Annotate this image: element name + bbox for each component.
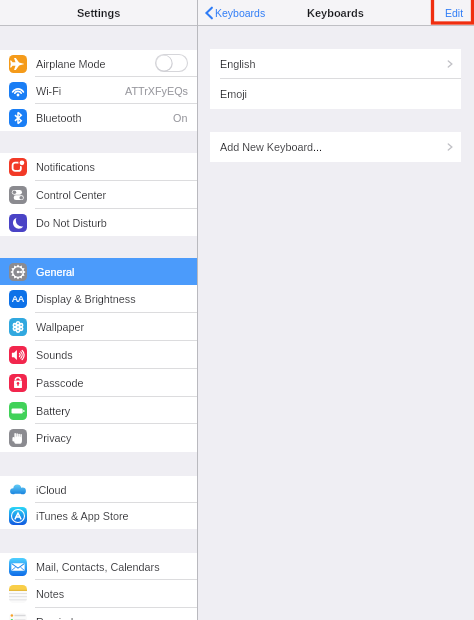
button[interactable]: Battery (0, 397, 197, 424)
staticText: iCloud (36, 484, 67, 496)
button[interactable]: Wi-Fi (0, 77, 197, 104)
staticText: Bluetooth (36, 112, 82, 124)
button[interactable]: Notifications (0, 153, 197, 181)
staticText: Notes (36, 588, 65, 600)
button[interactable]: AA (0, 285, 197, 313)
button[interactable]: Do Not Disturb (0, 209, 197, 236)
staticText: Wallpaper (36, 321, 85, 333)
staticText: Privacy (36, 432, 72, 444)
staticText: Notifications (36, 161, 95, 173)
button[interactable]: Notes (0, 580, 197, 608)
staticText: Keyboards (215, 7, 266, 19)
staticText: Mail, Contacts, Calendars (36, 561, 160, 573)
staticText: ATTrXFyEQs (125, 85, 188, 97)
staticText: On (173, 112, 188, 124)
staticText: Reminders (36, 616, 89, 620)
button[interactable]: Keyboards (197, 4, 274, 22)
button[interactable]: Edit (435, 3, 474, 23)
button[interactable]: English (210, 49, 461, 79)
staticText: Emoji (220, 88, 247, 100)
button[interactable]: Control Center (0, 181, 197, 209)
staticText: Wi-Fi (36, 85, 62, 97)
staticText: Edit (445, 7, 464, 19)
button[interactable]: Airplane Mode (0, 50, 197, 77)
button[interactable]: iCloud (0, 476, 197, 503)
staticText: Battery (36, 405, 71, 417)
staticText: Display & Brightness (36, 293, 136, 305)
staticText: Settings (77, 7, 121, 19)
button[interactable]: Wallpaper (0, 313, 197, 341)
staticText: Do Not Disturb (36, 217, 107, 229)
button[interactable]: Mail, Contacts, Calendars (0, 553, 197, 580)
staticText: Sounds (36, 349, 73, 361)
staticText: Add New Keyboard... (220, 141, 323, 153)
staticText: Keyboards (307, 7, 364, 19)
staticText: AA (12, 294, 25, 304)
button[interactable]: Reminders (0, 608, 197, 620)
staticText: English (220, 58, 256, 70)
staticText: Control Center (36, 189, 107, 201)
staticText: iTunes & App Store (36, 510, 129, 522)
button[interactable]: iTunes & App Store (0, 503, 197, 529)
button[interactable]: Airplane Mode toggle, off (155, 54, 188, 72)
button[interactable]: Bluetooth (0, 104, 197, 131)
staticText: General (36, 266, 75, 278)
button[interactable]: Add New Keyboard... (210, 132, 461, 162)
button[interactable]: Passcode (0, 369, 197, 397)
staticText: Airplane Mode (36, 58, 106, 70)
staticText: Passcode (36, 377, 84, 389)
button[interactable]: Privacy (0, 424, 197, 452)
button[interactable]: Sounds (0, 341, 197, 369)
button[interactable]: Emoji (210, 79, 461, 109)
button[interactable]: General (0, 258, 197, 285)
